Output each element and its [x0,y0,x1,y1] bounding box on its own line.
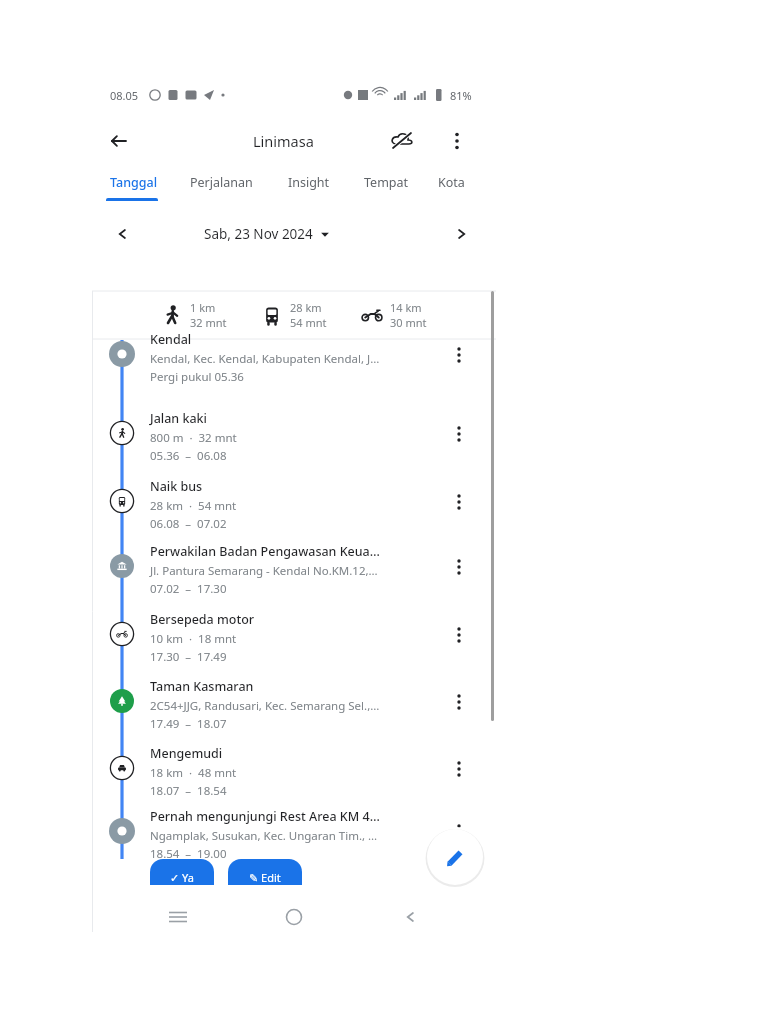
staticText: 07.02 – 17.30 [150,581,227,597]
button[interactable]: Home [274,900,314,934]
staticText: 32 mnt [190,315,227,330]
button[interactable]: Bersepeda motor [92,608,496,675]
staticText: 17.30 – 17.49 [150,649,227,665]
button[interactable]: Previous day [108,220,136,248]
staticText: 2C54+JJG, Randusari, Kec. Semarang Sel.,… [150,698,380,714]
button[interactable]: More options [447,555,471,579]
staticText: 81% [450,88,472,103]
staticText: 28 km · 54 mnt [150,498,237,514]
button[interactable]: More options [447,343,471,367]
button[interactable]: Jalan kaki [92,407,496,474]
button[interactable]: Mengemudi [92,742,496,809]
button[interactable]: Back [390,900,430,934]
staticText: 18 km · 48 mnt [150,765,237,781]
staticText: ✎ Edit [249,870,281,885]
staticText: 17.49 – 18.07 [150,716,227,732]
staticText: 800 m · 32 mnt [150,430,237,446]
staticText: 05.36 – 06.08 [150,448,227,464]
button[interactable]: Naik bus [92,474,496,541]
staticText: Kota [438,174,465,191]
staticText: Kendal [150,331,192,348]
button[interactable]: Sab, 23 Nov 2024 [204,218,331,250]
staticText: ✓ Ya [170,870,194,885]
staticText: 18.07 – 18.54 [150,783,227,799]
button[interactable]: More options [447,623,471,647]
button[interactable]: Perjalanan [190,164,253,204]
staticText: Pergi pukul 05.36 [150,369,244,385]
button[interactable]: Edit [425,827,485,887]
button[interactable]: Next day [448,220,476,248]
button[interactable]: Location history off [387,126,417,156]
staticText: 30 mnt [390,315,427,330]
staticText: Tempat [364,174,409,191]
staticText: Mengemudi [150,745,223,762]
button[interactable]: Perwakilan Badan Pengawasan Keuangan d… [92,541,496,608]
button[interactable]: Kendal [92,340,496,407]
staticText: Jalan kaki [150,410,207,427]
button[interactable]: Insight [288,164,330,204]
staticText: Perwakilan Badan Pengawasan Keuangan d… [150,543,380,560]
staticText: Sab, 23 Nov 2024 [204,225,313,243]
button[interactable]: More options [442,126,472,156]
staticText: 08.05 [110,88,139,103]
button[interactable]: Tanggal [110,164,158,204]
staticText: 54 mnt [290,315,327,330]
staticText: Pernah mengunjungi Rest Area KM 429 A To… [150,808,380,825]
staticText: Jl. Pantura Semarang - Kendal No.KM.12, … [150,563,380,579]
staticText: 18.54 – 19.00 [150,846,227,858]
staticText: Naik bus [150,478,203,495]
staticText: Ngamplak, Susukan, Kec. Ungaran Tim., Ka… [150,828,380,844]
staticText: 06.08 – 07.02 [150,516,227,532]
button[interactable]: Tempat [364,164,409,204]
button[interactable]: Back [104,126,134,156]
button[interactable]: ✎ Edit [228,859,302,885]
staticText: Perjalanan [190,174,253,191]
button[interactable]: Kota [438,164,465,204]
staticText: 10 km · 18 mnt [150,631,237,647]
button[interactable]: Pernah mengunjungi Rest Area KM 429 A To… [92,809,496,859]
button[interactable]: ✓ Ya [150,859,214,885]
staticText: Bersepeda motor [150,611,255,628]
button[interactable]: Recent apps [158,900,198,934]
staticText: 28 km [290,300,322,315]
staticText: 1 km [190,300,216,315]
staticText: 14 km [390,300,422,315]
staticText: Linimasa [253,131,314,151]
button[interactable]: More options [447,422,471,446]
button[interactable]: More options [447,757,471,781]
staticText: Insight [288,174,330,191]
button[interactable]: Taman Kasmaran [92,675,496,742]
button[interactable]: More options [447,690,471,714]
button[interactable]: More options [447,490,471,514]
staticText: Taman Kasmaran [150,678,254,695]
staticText: Tanggal [110,174,158,191]
button[interactable]: More options [447,820,471,844]
staticText: Kendal, Kec. Kendal, Kabupaten Kendal, J… [150,351,380,367]
